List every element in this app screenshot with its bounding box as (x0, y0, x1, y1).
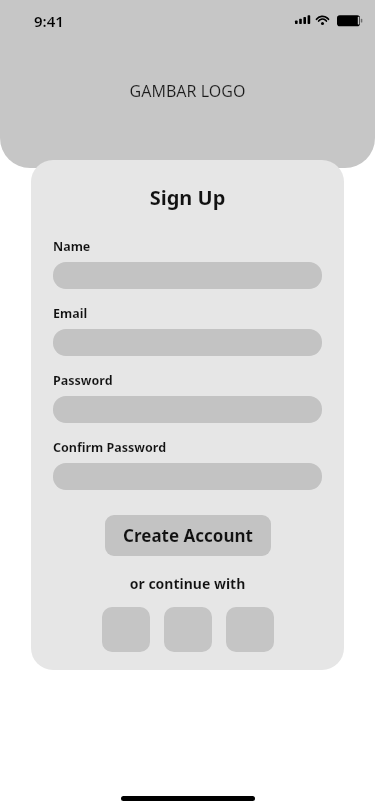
button[interactable]: Name (53, 262, 322, 289)
staticText: Password (53, 372, 113, 389)
button[interactable]: Sign up with Facebook (164, 607, 212, 652)
staticText: GAMBAR LOGO (0, 80, 375, 102)
button[interactable]: Sign up with Google (102, 607, 150, 652)
button[interactable]: Email (53, 329, 322, 356)
button[interactable]: Confirm Password (53, 463, 322, 490)
button[interactable]: Sign up with Apple (226, 607, 274, 652)
staticText: or continue with (53, 574, 322, 593)
staticText: Confirm Password (53, 439, 167, 456)
staticText: Sign Up (53, 184, 322, 211)
button[interactable]: Create Account (105, 515, 271, 556)
staticText: Email (53, 305, 88, 322)
staticText: Create Account (123, 524, 253, 547)
button[interactable]: Password (53, 396, 322, 423)
staticText: Name (53, 238, 91, 255)
staticText: 9:41 (34, 11, 64, 31)
